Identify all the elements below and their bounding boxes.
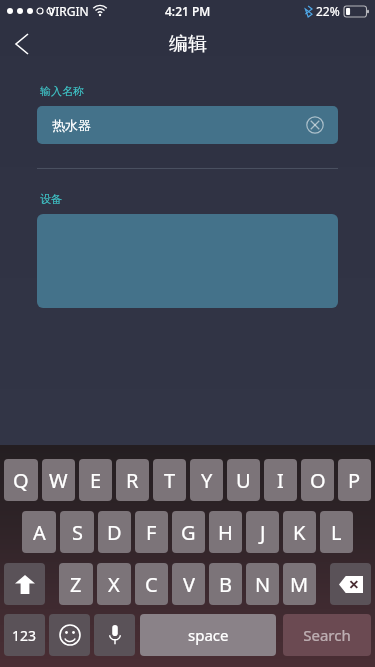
- button[interactable]: R: [116, 459, 149, 501]
- button[interactable]: Emoji: [49, 614, 90, 656]
- button[interactable]: Z: [59, 563, 93, 605]
- button[interactable]: 123: [4, 614, 45, 656]
- staticText: R: [126, 467, 139, 494]
- button[interactable]: J: [246, 511, 279, 553]
- button[interactable]: S: [60, 511, 94, 553]
- button[interactable]: D: [98, 511, 131, 553]
- staticText: P: [348, 467, 361, 494]
- staticText: J: [260, 519, 266, 546]
- staticText: M: [290, 571, 309, 598]
- staticText: H: [218, 519, 233, 546]
- button[interactable]: E: [79, 459, 112, 501]
- button[interactable]: X: [97, 563, 131, 605]
- button[interactable]: O: [301, 459, 334, 501]
- button[interactable]: G: [172, 511, 205, 553]
- button[interactable]: U: [227, 459, 260, 501]
- staticText: VIRGIN: [48, 3, 89, 19]
- staticText: A: [33, 519, 46, 546]
- button[interactable]: 热水器: [37, 106, 338, 144]
- button[interactable]: W: [42, 459, 75, 501]
- staticText: N: [255, 571, 271, 598]
- button[interactable]: Voice input: [94, 614, 135, 656]
- button[interactable]: P: [338, 459, 371, 501]
- staticText: W: [49, 467, 68, 494]
- staticText: O: [310, 467, 326, 494]
- staticText: space: [188, 625, 229, 645]
- button[interactable]: T: [153, 459, 186, 501]
- staticText: 设备: [40, 192, 62, 206]
- staticText: 123: [12, 626, 37, 645]
- staticText: 4:21 PM: [165, 3, 211, 19]
- button[interactable]: C: [135, 563, 168, 605]
- button[interactable]: I: [264, 459, 297, 501]
- button[interactable]: K: [283, 511, 316, 553]
- button[interactable]: Search: [283, 614, 371, 656]
- staticText: 热水器: [52, 117, 91, 133]
- button[interactable]: B: [209, 563, 242, 605]
- staticText: F: [146, 519, 157, 546]
- button[interactable]: Y: [190, 459, 223, 501]
- staticText: S: [72, 519, 83, 546]
- staticText: K: [293, 519, 306, 546]
- button[interactable]: Clear text: [304, 114, 326, 136]
- staticText: 输入名称: [40, 84, 84, 98]
- button[interactable]: space: [140, 614, 276, 656]
- staticText: I: [277, 467, 284, 494]
- staticText: 22%: [316, 3, 340, 19]
- button[interactable]: F: [135, 511, 168, 553]
- staticText: Q: [13, 467, 29, 494]
- button[interactable]: Backspace: [330, 563, 371, 605]
- button[interactable]: H: [209, 511, 242, 553]
- staticText: V: [183, 571, 195, 598]
- button[interactable]: Back: [0, 22, 44, 66]
- staticText: B: [219, 571, 232, 598]
- button[interactable]: N: [246, 563, 279, 605]
- staticText: 编辑: [169, 32, 207, 56]
- staticText: C: [145, 571, 158, 598]
- button[interactable]: Q: [4, 459, 38, 501]
- staticText: Search: [303, 625, 351, 645]
- staticText: Z: [70, 571, 82, 598]
- staticText: E: [90, 467, 102, 494]
- button[interactable]: Shift: [4, 563, 45, 605]
- button[interactable]: A: [22, 511, 56, 553]
- staticText: G: [181, 519, 196, 546]
- staticText: L: [331, 519, 342, 546]
- button[interactable]: V: [172, 563, 205, 605]
- button[interactable]: M: [283, 563, 316, 605]
- staticText: D: [107, 519, 122, 546]
- staticText: Y: [201, 467, 213, 494]
- button[interactable]: L: [320, 511, 353, 553]
- staticText: U: [236, 467, 251, 494]
- staticText: T: [164, 467, 176, 494]
- staticText: X: [108, 571, 120, 598]
